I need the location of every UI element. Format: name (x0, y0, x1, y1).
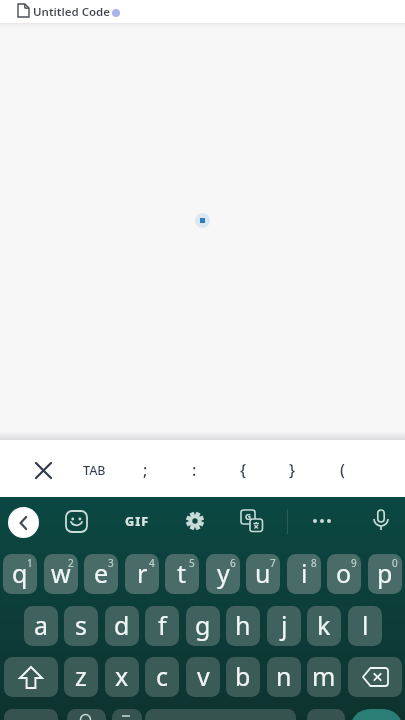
button[interactable]: t (165, 554, 199, 594)
staticText: 5 (189, 556, 195, 570)
button[interactable] (178, 504, 212, 538)
button[interactable]: ( (320, 450, 364, 490)
staticText: x (115, 659, 129, 693)
button[interactable]: z (64, 657, 98, 697)
button[interactable]: ; (123, 450, 167, 490)
button[interactable]: c (145, 657, 179, 697)
button[interactable] (364, 504, 398, 538)
staticText: e (94, 556, 109, 590)
staticText: s (75, 608, 87, 642)
staticText: 0 (392, 556, 398, 570)
button[interactable] (350, 709, 403, 720)
button[interactable] (59, 504, 93, 538)
staticText: 7 (270, 556, 276, 570)
staticText: 2 (68, 556, 74, 570)
button[interactable]: e (84, 554, 118, 594)
button[interactable]: r (125, 554, 159, 594)
staticText: j (281, 608, 288, 642)
staticText: o (336, 556, 352, 590)
staticText: 9 (351, 556, 357, 570)
button[interactable]: m (307, 657, 341, 697)
staticText: c (156, 659, 169, 693)
staticText: p (377, 556, 393, 590)
button[interactable] (305, 504, 339, 538)
staticText: t (177, 556, 187, 590)
staticText: k (317, 608, 331, 642)
staticText: f (158, 608, 167, 642)
button[interactable]: v (186, 657, 220, 697)
button[interactable]: h (226, 606, 260, 646)
staticText: TAB (83, 462, 106, 479)
staticText: h (235, 608, 251, 642)
button[interactable]: Untitled Code (33, 2, 148, 21)
button[interactable] (145, 709, 296, 720)
button[interactable] (25, 452, 61, 488)
button[interactable]: a (24, 606, 58, 646)
button[interactable]: p (368, 554, 402, 594)
staticText: 4 (149, 556, 155, 570)
button[interactable]: l (348, 606, 382, 646)
button[interactable]: x (105, 657, 139, 697)
staticText: l (362, 608, 369, 642)
staticText: G (245, 511, 252, 523)
staticText: r (137, 556, 148, 590)
staticText: m (312, 659, 336, 693)
button[interactable]: y (206, 554, 240, 594)
button[interactable]: n (267, 657, 301, 697)
staticText: d (114, 608, 130, 642)
staticText: n (276, 659, 292, 693)
staticText: GIF (125, 513, 150, 530)
button[interactable]: } (270, 450, 314, 490)
staticText: Untitled Code (33, 4, 111, 20)
button[interactable]: G (235, 504, 269, 538)
button[interactable]: : (172, 450, 216, 490)
staticText: u (255, 556, 271, 590)
staticText: y (217, 556, 230, 590)
button[interactable]: u (246, 554, 280, 594)
staticText: v (197, 659, 210, 693)
staticText: 8 (311, 556, 317, 570)
button[interactable]: GIF (117, 504, 157, 538)
staticText: ( (340, 459, 345, 481)
staticText: b (235, 659, 251, 693)
button[interactable]: i (287, 554, 321, 594)
button[interactable] (112, 709, 142, 720)
staticText: 1 (27, 556, 33, 570)
staticText: w (51, 556, 71, 590)
staticText: } (289, 459, 296, 481)
staticText: i (301, 556, 308, 590)
staticText: z (75, 659, 87, 693)
staticText: g (195, 608, 211, 642)
staticText: a (34, 608, 49, 642)
button[interactable]: q (3, 554, 37, 594)
staticText: q (12, 556, 28, 590)
button[interactable]: k (307, 606, 341, 646)
staticText: 3 (108, 556, 114, 570)
staticText: { (240, 459, 247, 481)
button[interactable] (307, 709, 345, 720)
button[interactable]: w (44, 554, 78, 594)
button[interactable] (8, 507, 39, 538)
button[interactable]: b (226, 657, 260, 697)
button[interactable] (67, 709, 106, 720)
staticText: : (192, 459, 197, 481)
button[interactable] (4, 709, 58, 720)
button[interactable]: { (221, 450, 265, 490)
button[interactable]: j (267, 606, 301, 646)
button[interactable]: g (186, 606, 220, 646)
button[interactable]: d (105, 606, 139, 646)
staticText: 6 (230, 556, 236, 570)
button[interactable]: s (64, 606, 98, 646)
button[interactable] (348, 657, 402, 697)
button[interactable]: f (145, 606, 179, 646)
button[interactable]: o (327, 554, 361, 594)
staticText: ; (143, 459, 148, 481)
button[interactable] (4, 657, 58, 697)
button[interactable]: TAB (72, 450, 116, 490)
